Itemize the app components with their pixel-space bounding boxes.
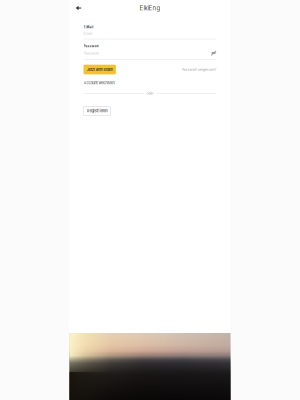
button[interactable]: Back xyxy=(73,2,84,14)
button[interactable]: Passwort vergessen? xyxy=(181,65,216,74)
staticText: Passwort xyxy=(83,51,98,55)
staticText: Jetzt anmelden xyxy=(87,67,113,72)
staticText: Passwort xyxy=(83,44,98,48)
staticText: E-Mail xyxy=(83,25,93,29)
staticText: Email xyxy=(83,31,92,36)
staticText: Passwort vergessen? xyxy=(181,67,216,72)
staticText: Registrieren xyxy=(87,108,108,113)
staticText: oder xyxy=(146,91,153,95)
button[interactable]: Account wechseln xyxy=(83,80,114,85)
button[interactable]: Registrieren xyxy=(83,106,111,115)
staticText: Account wechseln xyxy=(83,80,114,85)
staticText: ElkiEng xyxy=(139,4,160,12)
button[interactable]: Jetzt anmelden xyxy=(83,65,116,74)
